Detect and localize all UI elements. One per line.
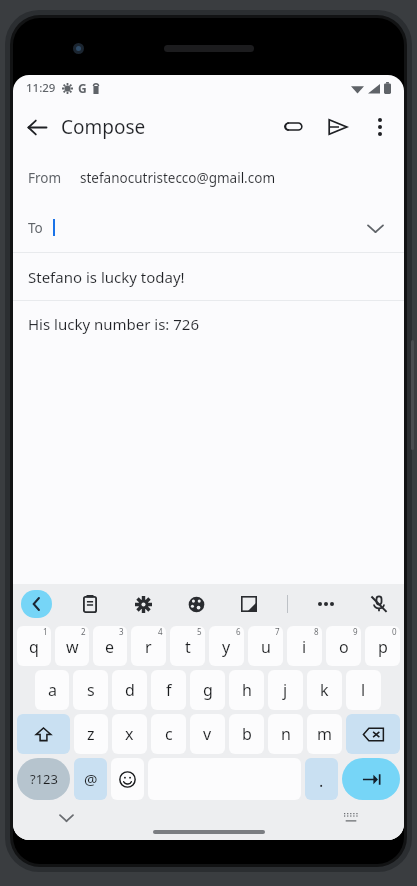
button[interactable]: ?123 xyxy=(17,758,70,800)
button[interactable]: d xyxy=(112,670,147,710)
button[interactable]: Previous xyxy=(21,590,52,618)
button[interactable]: More xyxy=(311,589,341,619)
staticText: c xyxy=(165,723,173,745)
staticText: 6 xyxy=(236,626,241,637)
button[interactable]: n xyxy=(268,714,303,754)
button[interactable]: More options xyxy=(360,107,400,147)
button[interactable]: c xyxy=(151,714,186,754)
staticText: 1 xyxy=(43,626,48,637)
staticText: @ xyxy=(84,769,98,789)
staticText: To xyxy=(28,219,43,237)
button[interactable]: To xyxy=(13,203,404,252)
staticText: v xyxy=(203,723,212,745)
button[interactable]: j xyxy=(268,670,303,710)
button[interactable]: e xyxy=(93,626,127,666)
button[interactable]: Next field xyxy=(342,758,400,800)
button[interactable]: Resize keyboard xyxy=(234,589,264,619)
button[interactable]: Clipboard xyxy=(75,589,105,619)
staticText: t xyxy=(185,636,191,658)
button[interactable]: . xyxy=(305,758,338,800)
button[interactable]: x xyxy=(112,714,147,754)
button[interactable]: Settings xyxy=(128,589,158,619)
button[interactable]: f xyxy=(151,670,186,710)
button[interactable]: y xyxy=(209,626,244,666)
button[interactable]: r xyxy=(131,626,166,666)
button[interactable]: o xyxy=(326,626,361,666)
button[interactable]: g xyxy=(190,670,225,710)
staticText: 4 xyxy=(158,626,163,637)
staticText: His lucky number is: 726 xyxy=(28,314,200,334)
staticText: 8 xyxy=(314,626,319,637)
button[interactable]: @ xyxy=(74,758,107,800)
staticText: stefanocutristecco@gmail.com xyxy=(80,169,276,187)
staticText: z xyxy=(87,723,95,745)
staticText: f xyxy=(166,679,172,701)
staticText: j xyxy=(283,679,288,701)
button[interactable]: Hide keyboard xyxy=(51,803,81,833)
button[interactable]: q xyxy=(17,626,51,666)
staticText: w xyxy=(66,636,79,658)
staticText: r xyxy=(145,636,152,658)
staticText: b xyxy=(242,723,252,745)
button[interactable]: Themes xyxy=(181,589,211,619)
staticText: u xyxy=(261,636,271,658)
button[interactable]: Back xyxy=(13,103,61,151)
staticText: Stefano is lucky today! xyxy=(28,267,185,287)
staticText: d xyxy=(125,679,135,701)
button[interactable]: p xyxy=(365,626,400,666)
button[interactable]: His lucky number is: 726 xyxy=(13,301,404,347)
staticText: 3 xyxy=(119,626,124,637)
staticText: 5 xyxy=(197,626,202,637)
button[interactable]: z xyxy=(74,714,108,754)
staticText: Compose xyxy=(61,114,146,140)
staticText: . xyxy=(319,770,324,792)
button[interactable]: l xyxy=(346,670,381,710)
button[interactable]: b xyxy=(229,714,264,754)
staticText: g xyxy=(203,679,213,701)
button[interactable]: u xyxy=(248,626,283,666)
button[interactable]: Emoji xyxy=(111,758,144,800)
staticText: a xyxy=(48,679,57,701)
staticText: x xyxy=(125,723,134,745)
staticText: o xyxy=(339,636,349,658)
button[interactable]: Expand recipients xyxy=(356,209,394,247)
staticText: l xyxy=(361,679,366,701)
staticText: s xyxy=(87,679,95,701)
staticText: From xyxy=(28,169,62,187)
staticText: 11:29 xyxy=(26,80,56,96)
button[interactable]: t xyxy=(170,626,205,666)
button[interactable]: a xyxy=(35,670,69,710)
staticText: 9 xyxy=(353,626,358,637)
button[interactable]: w xyxy=(55,626,89,666)
staticText: ?123 xyxy=(30,770,58,788)
button[interactable]: k xyxy=(307,670,342,710)
staticText: e xyxy=(105,636,115,658)
staticText: p xyxy=(378,636,388,658)
button[interactable]: Backspace xyxy=(346,714,400,754)
button[interactable]: Switch keyboard xyxy=(336,803,366,833)
button[interactable]: From xyxy=(13,153,404,203)
button[interactable]: Mic off xyxy=(364,589,394,619)
button[interactable]: Attach file xyxy=(272,105,316,149)
button[interactable]: Send xyxy=(316,105,360,149)
button[interactable]: h xyxy=(229,670,264,710)
button[interactable]: i xyxy=(287,626,322,666)
staticText: m xyxy=(317,723,332,745)
staticText: y xyxy=(222,636,231,658)
staticText: G xyxy=(78,80,87,96)
staticText: q xyxy=(29,636,39,658)
staticText: 2 xyxy=(81,626,86,637)
button[interactable]: s xyxy=(73,670,108,710)
staticText: h xyxy=(242,679,252,701)
button[interactable]: Stefano is lucky today! xyxy=(13,253,404,300)
button[interactable]: v xyxy=(190,714,225,754)
staticText: i xyxy=(302,636,307,658)
staticText: 7 xyxy=(275,626,280,637)
button[interactable]: Shift xyxy=(17,714,70,754)
button[interactable]: m xyxy=(307,714,342,754)
staticText: k xyxy=(320,679,329,701)
staticText: 0 xyxy=(392,626,397,637)
staticText: n xyxy=(281,723,291,745)
